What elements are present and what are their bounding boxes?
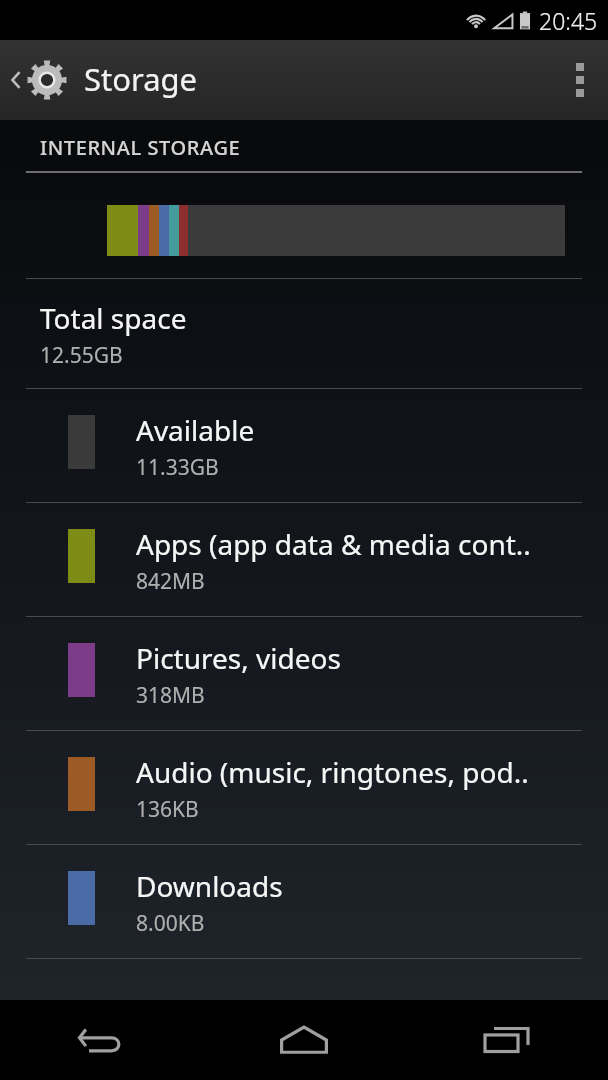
button[interactable]: Apps (app data & media cont.. (0, 503, 608, 616)
staticText: Total space (40, 299, 187, 337)
staticText: INTERNAL STORAGE (40, 134, 241, 161)
button[interactable]: Pictures, videos (0, 617, 608, 730)
staticText: 136KB (136, 795, 199, 824)
staticText: Storage (84, 58, 198, 100)
staticText: 8.00KB (136, 909, 205, 938)
staticText: Audio (music, ringtones, pod.. (136, 753, 529, 791)
staticText: Available (136, 411, 255, 449)
button[interactable]: Recent apps (405, 1000, 608, 1080)
staticText: 842MB (136, 567, 205, 596)
staticText: Pictures, videos (136, 639, 341, 677)
staticText: Apps (app data & media cont.. (136, 525, 531, 563)
button[interactable]: Total space (0, 279, 608, 388)
staticText: Downloads (136, 867, 283, 905)
button[interactable]: Navigate up (0, 49, 74, 111)
staticText: 318MB (136, 681, 205, 710)
staticText: 20:45 (539, 5, 598, 36)
button[interactable]: Home (202, 1000, 405, 1080)
button[interactable]: Available (0, 389, 608, 502)
staticText: 12.55GB (40, 341, 123, 370)
button[interactable]: Back (0, 1000, 202, 1080)
button[interactable]: Downloads (0, 845, 608, 958)
staticText: 11.33GB (136, 453, 219, 482)
button[interactable]: More options (552, 40, 608, 120)
button[interactable]: Audio (music, ringtones, pod.. (0, 731, 608, 844)
